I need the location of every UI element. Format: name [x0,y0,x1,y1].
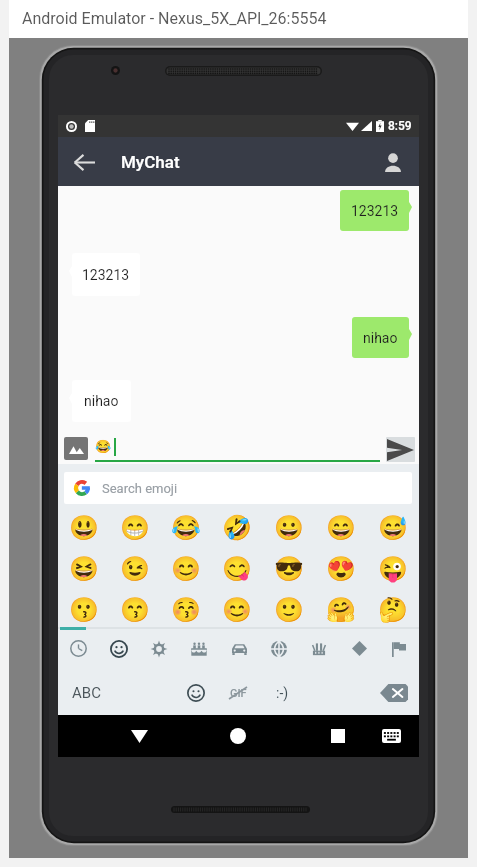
button[interactable]: Back [65,143,103,181]
button[interactable]: 123213 [72,253,140,296]
staticText: 🤗 [326,596,356,624]
button[interactable]: 😊 [211,586,263,627]
button[interactable]: Recent [58,627,99,670]
staticText: 😃 [69,514,99,542]
button[interactable]: 😆 [58,545,109,586]
staticText: 😄 [326,514,356,542]
button[interactable]: Flags [379,627,419,670]
staticText: 😁 [120,514,150,542]
staticText: 😙 [120,596,150,624]
button[interactable]: Objects [299,627,339,670]
button[interactable]: Smileys [99,627,139,670]
staticText: 123213 [351,203,399,219]
button[interactable]: Search emoji [64,472,412,504]
button[interactable]: 😄 [315,504,367,545]
staticText: 🤣 [222,514,252,542]
button[interactable]: nihao [352,317,409,358]
button[interactable]: 🤗 [315,586,367,627]
button[interactable]: Send [386,437,415,462]
staticText: 🤔 [378,596,408,624]
staticText: 😊 [171,555,201,583]
button[interactable]: 😍 [315,545,367,586]
button[interactable]: 😚 [160,586,211,627]
staticText: 😜 [378,555,408,583]
staticText: 😅 [378,514,408,542]
button[interactable]: 😁 [109,504,160,545]
staticText: 😋 [222,555,252,583]
staticText: GIF [230,687,247,700]
staticText: 😊 [222,596,252,624]
button[interactable]: 😙 [109,586,160,627]
staticText: Search emoji [102,481,178,496]
button[interactable]: 😃 [58,504,109,545]
button[interactable]: 😗 [58,586,109,627]
button[interactable]: Symbols [339,627,379,670]
button[interactable]: ABC [72,684,101,702]
button[interactable]: Profile [375,144,411,180]
staticText: 🙂 [274,596,304,624]
button[interactable]: Nature [139,627,179,670]
button[interactable]: People [179,627,219,670]
button[interactable]: 😉 [109,545,160,586]
staticText: 😆 [69,555,99,583]
button[interactable]: 😎 [263,545,315,586]
button[interactable]: Activities [259,627,299,670]
staticText: 😉 [120,555,150,583]
button[interactable]: Home [218,716,258,756]
button[interactable]: GIF [220,680,256,706]
button[interactable]: 😅 [367,504,419,545]
button[interactable]: Backspace [376,679,412,707]
staticText: ABC [72,684,101,702]
staticText: 😚 [171,596,201,624]
button[interactable]: Travel [219,627,259,670]
staticText: nihao [84,393,119,409]
staticText: 😍 [326,555,356,583]
button[interactable]: Emoji [180,677,212,709]
button[interactable]: 😀 [263,504,315,545]
staticText: 8:59 [388,119,412,133]
staticText: MyChat [121,152,180,172]
button[interactable]: 😜 [367,545,419,586]
staticText: 😂 [171,514,201,542]
staticText: 😀 [274,514,304,542]
staticText: :-) [276,685,289,701]
button[interactable]: 😂 [160,504,211,545]
staticText: nihao [363,330,398,346]
button[interactable]: 🤣 [211,504,263,545]
button[interactable]: :-) [266,680,298,706]
button[interactable]: 123213 [340,190,409,231]
button[interactable]: 😋 [211,545,263,586]
button[interactable]: Recent apps [318,716,358,756]
staticText: 123213 [82,267,130,283]
staticText: 😎 [274,555,304,583]
button[interactable]: 😊 [160,545,211,586]
button[interactable]: Back [119,716,159,756]
staticText: 😂 [95,439,112,454]
staticText: 😗 [69,596,99,624]
button[interactable]: nihao [72,380,131,422]
button[interactable]: 🙂 [263,586,315,627]
button[interactable]: Keyboard [371,716,411,756]
button[interactable]: 🤔 [367,586,419,627]
staticText: Android Emulator - Nexus_5X_API_26:5554 [22,9,327,28]
button[interactable]: Attach image [64,437,88,460]
